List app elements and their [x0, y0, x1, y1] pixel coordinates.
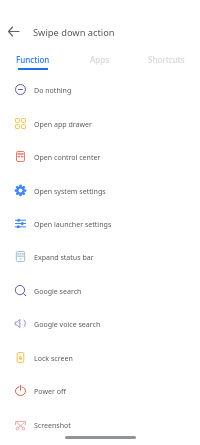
staticText: Function [16, 54, 50, 65]
button[interactable]: Do nothing [0, 73, 200, 106]
staticText: Shortcuts [148, 54, 185, 65]
staticText: Open system settings [34, 186, 106, 196]
button[interactable]: Power off [0, 374, 200, 407]
button[interactable]: Google search [0, 274, 200, 307]
staticText: Google search [34, 286, 82, 296]
button[interactable]: Open launcher settings [0, 207, 200, 240]
staticText: Power off [34, 386, 66, 396]
button[interactable]: Lock screen [0, 341, 200, 374]
button[interactable]: Open app drawer [0, 107, 200, 140]
staticText: Screenshot [34, 420, 71, 430]
staticText: Open control center [34, 152, 101, 162]
staticText: Expand status bar [34, 252, 94, 262]
button[interactable]: Apps [66, 50, 133, 68]
staticText: Do nothing [34, 85, 72, 95]
button[interactable]: Screenshot [0, 408, 200, 441]
button[interactable]: Back [3, 21, 24, 42]
button[interactable]: Open system settings [0, 174, 200, 207]
button[interactable]: Shortcuts [133, 50, 200, 68]
button[interactable]: Open control center [0, 140, 200, 173]
staticText: Open app drawer [34, 119, 92, 129]
button[interactable]: Expand status bar [0, 240, 200, 273]
staticText: Swipe down action [33, 26, 115, 39]
staticText: Google voice search [34, 319, 101, 329]
staticText: Apps [90, 54, 110, 65]
button[interactable]: Function [0, 50, 66, 68]
staticText: Lock screen [34, 353, 73, 363]
staticText: Open launcher settings [34, 219, 112, 229]
button[interactable]: Google voice search [0, 307, 200, 340]
